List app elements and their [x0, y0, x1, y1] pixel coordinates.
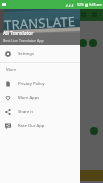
staticText: 92% — [77, 2, 84, 7]
staticText: TRANSLATE — [4, 12, 76, 34]
staticText: More — [6, 67, 17, 73]
staticText: Rate Our App — [18, 123, 45, 129]
staticText: Best Live Translator App — [3, 38, 44, 43]
button[interactable]: Privacy Policy — [0, 77, 80, 91]
staticText: Settings — [18, 51, 34, 57]
staticText: All Translator — [3, 30, 34, 37]
staticText: Share it — [18, 109, 33, 115]
staticText: 9:35 am — [89, 2, 102, 7]
button[interactable]: Settings — [0, 47, 80, 61]
staticText: More Apps — [18, 95, 40, 101]
staticText: Privacy Policy — [18, 81, 45, 87]
button[interactable]: TRANSLATE — [0, 0, 80, 45]
button[interactable]: Share it — [0, 105, 80, 119]
button[interactable]: Rate Our App — [0, 119, 80, 133]
button[interactable]: More Apps — [0, 91, 80, 105]
